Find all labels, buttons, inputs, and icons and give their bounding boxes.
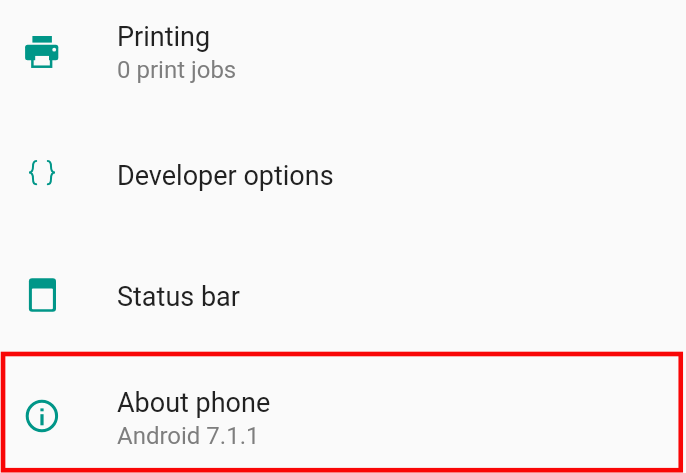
staticText: Printing bbox=[117, 21, 211, 53]
staticText: 0 print jobs bbox=[117, 56, 237, 84]
other: About phone bbox=[24, 398, 60, 434]
button[interactable]: Developer options bbox=[0, 118, 686, 238]
other: Status bar bbox=[24, 277, 60, 313]
staticText: Android 7.1.1 bbox=[117, 422, 260, 450]
button[interactable]: About phone bbox=[0, 352, 686, 473]
other: Developer options bbox=[24, 155, 60, 191]
other: Printing bbox=[24, 33, 60, 69]
staticText: About phone bbox=[117, 387, 271, 419]
staticText: Status bar bbox=[117, 281, 240, 313]
button[interactable]: Printing bbox=[0, 0, 686, 118]
button[interactable]: Status bar bbox=[0, 238, 686, 352]
staticText: Developer options bbox=[117, 160, 334, 192]
